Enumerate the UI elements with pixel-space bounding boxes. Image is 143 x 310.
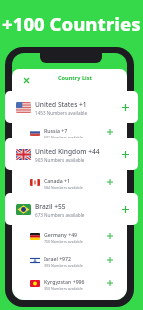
- button[interactable]: Add Israel: [105, 255, 115, 265]
- staticText: Kyrgyzstan +996: [44, 278, 85, 285]
- button[interactable]: Add United States: [119, 101, 131, 113]
- button[interactable]: Canada +1: [23, 171, 119, 193]
- staticText: United Kingdom +44: [35, 147, 100, 156]
- staticText: 903 Numbers available: [35, 157, 85, 163]
- staticText: 393 Numbers available: [44, 263, 83, 268]
- staticText: 750 Numbers available: [44, 239, 83, 244]
- staticText: Canada +1: [44, 177, 70, 184]
- staticText: Germany +49: [44, 231, 78, 238]
- button[interactable]: Russia +7: [23, 121, 119, 143]
- button[interactable]: United Kingdom +44: [5, 138, 138, 170]
- button[interactable]: Kyrgyzstan +996: [23, 272, 119, 294]
- button[interactable]: Add Germany: [105, 231, 115, 241]
- button[interactable]: Add Kyrgyzstan: [105, 278, 115, 288]
- staticText: United States +1: [35, 100, 87, 109]
- button[interactable]: Add Russia: [105, 127, 115, 137]
- staticText: 1453 Numbers available: [35, 110, 88, 116]
- button[interactable]: United States +1: [5, 91, 138, 123]
- button[interactable]: Brazil +55: [5, 193, 138, 225]
- button[interactable]: Add Brazil: [119, 203, 131, 215]
- staticText: 350 Numbers available: [44, 286, 83, 291]
- button[interactable]: Israel +972: [23, 249, 119, 271]
- button[interactable]: Germany +49: [23, 225, 119, 247]
- staticText: Russia +7: [44, 127, 68, 134]
- staticText: 673 Numbers available: [35, 212, 85, 218]
- staticText: 584 Numbers available: [44, 185, 83, 190]
- staticText: 601 Numbers available: [44, 135, 83, 140]
- button[interactable]: Add Canada: [105, 177, 115, 187]
- button[interactable]: Add United Kingdom: [119, 148, 131, 160]
- staticText: Brazil +55: [35, 202, 66, 211]
- staticText: +100 Countries: [2, 11, 141, 36]
- button[interactable]: Close: [20, 74, 32, 86]
- staticText: Country List: [58, 74, 92, 82]
- staticText: Israel +972: [44, 255, 72, 262]
